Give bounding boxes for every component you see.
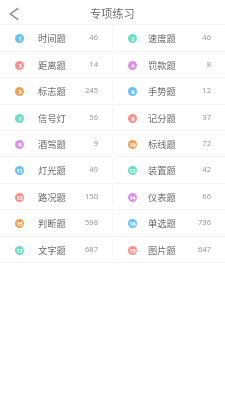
button[interactable]: 13: [0, 183, 113, 209]
staticText: 信号灯: [38, 111, 66, 124]
button[interactable]: 11: [0, 156, 113, 182]
button[interactable]: 12: [113, 156, 225, 182]
staticText: 文字题: [38, 243, 66, 256]
staticText: 647: [197, 244, 211, 254]
button[interactable]: 16: [113, 209, 225, 235]
staticText: 12: [129, 167, 136, 174]
staticText: 46: [89, 32, 98, 42]
button[interactable]: 1: [0, 24, 113, 50]
button[interactable]: 17: [0, 236, 113, 262]
button[interactable]: 3: [0, 51, 113, 77]
staticText: 判断题: [38, 216, 66, 229]
staticText: 罚款题: [148, 58, 176, 71]
staticText: 速度题: [148, 31, 176, 44]
staticText: 时间题: [38, 31, 66, 44]
staticText: 17: [16, 247, 23, 254]
staticText: 15: [16, 220, 23, 227]
staticText: 66: [202, 191, 211, 201]
staticText: 42: [202, 164, 211, 174]
staticText: 46: [202, 32, 211, 42]
staticText: 736: [197, 217, 211, 227]
staticText: 记分题: [148, 111, 176, 124]
staticText: 18: [129, 247, 136, 254]
staticText: 6: [131, 88, 135, 95]
button[interactable]: 14: [113, 183, 225, 209]
staticText: 72: [202, 138, 211, 148]
staticText: 13: [16, 194, 23, 201]
staticText: 图片题: [148, 243, 176, 256]
staticText: 37: [202, 112, 211, 122]
staticText: 装置题: [148, 163, 176, 176]
button[interactable]: 9: [0, 130, 113, 156]
staticText: 245: [84, 85, 98, 95]
staticText: 9: [18, 141, 22, 148]
button[interactable]: 10: [113, 130, 225, 156]
staticText: 7: [18, 115, 22, 122]
staticText: 专项练习: [90, 5, 135, 21]
staticText: 3: [18, 62, 22, 69]
staticText: 1: [18, 35, 22, 42]
staticText: 11: [16, 167, 23, 174]
staticText: 598: [84, 217, 98, 227]
button[interactable]: Back: [3, 3, 25, 25]
staticText: 手势题: [148, 84, 176, 97]
staticText: 8: [206, 59, 211, 69]
staticText: 单选题: [148, 216, 176, 229]
staticText: 路况题: [38, 190, 66, 203]
button[interactable]: 6: [113, 77, 225, 103]
staticText: 150: [84, 191, 98, 201]
button[interactable]: 8: [113, 104, 225, 130]
staticText: 687: [84, 244, 98, 254]
staticText: 12: [202, 85, 211, 95]
staticText: 9: [93, 138, 98, 148]
staticText: 14: [89, 59, 98, 69]
button[interactable]: 5: [0, 77, 113, 103]
staticText: 56: [89, 112, 98, 122]
staticText: 4: [131, 62, 135, 69]
staticText: 2: [131, 35, 135, 42]
staticText: 5: [18, 88, 22, 95]
staticText: 灯光题: [38, 163, 66, 176]
staticText: 16: [129, 220, 136, 227]
staticText: 仪表题: [148, 190, 176, 203]
staticText: 14: [129, 194, 136, 201]
button[interactable]: 4: [113, 51, 225, 77]
button[interactable]: 18: [113, 236, 225, 262]
button[interactable]: 7: [0, 104, 113, 130]
staticText: 标志题: [38, 84, 66, 97]
staticText: 距离题: [38, 58, 66, 71]
button[interactable]: 15: [0, 209, 113, 235]
button[interactable]: 2: [113, 24, 225, 50]
staticText: 标线题: [148, 137, 176, 150]
staticText: 8: [131, 115, 135, 122]
staticText: 酒驾题: [38, 137, 66, 150]
staticText: 10: [129, 141, 136, 148]
staticText: 49: [89, 164, 98, 174]
